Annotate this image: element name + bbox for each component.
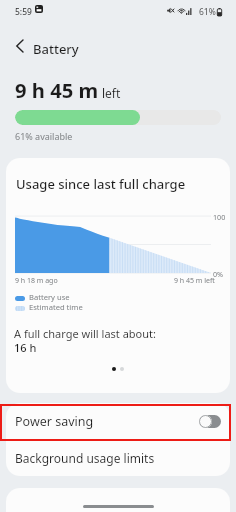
staticText: 5:59	[15, 6, 32, 18]
staticText: Battery use	[29, 292, 70, 302]
staticText: 0%	[213, 269, 224, 279]
staticText: A full charge will last about:	[14, 326, 156, 341]
staticText: 9 h 45 m	[15, 76, 99, 104]
staticText: Battery	[33, 40, 79, 58]
button[interactable]: Background usage limits	[6, 440, 230, 476]
button[interactable]: Power saving	[6, 403, 230, 440]
staticText: 61%	[199, 6, 216, 18]
staticText: 100	[213, 212, 226, 222]
staticText: Power saving	[15, 413, 94, 430]
staticText: Background usage limits	[15, 450, 155, 466]
button[interactable]: Back	[6, 33, 32, 59]
staticText: 16 h	[14, 340, 37, 355]
staticText: 9 h 18 m ago	[15, 276, 58, 286]
staticText: left	[102, 85, 121, 101]
staticText: 9 h 45 m left	[174, 276, 215, 286]
staticText: Usage since last full charge	[16, 175, 186, 193]
staticText: 61% available	[15, 130, 73, 142]
staticText: Estimated time	[29, 302, 83, 312]
